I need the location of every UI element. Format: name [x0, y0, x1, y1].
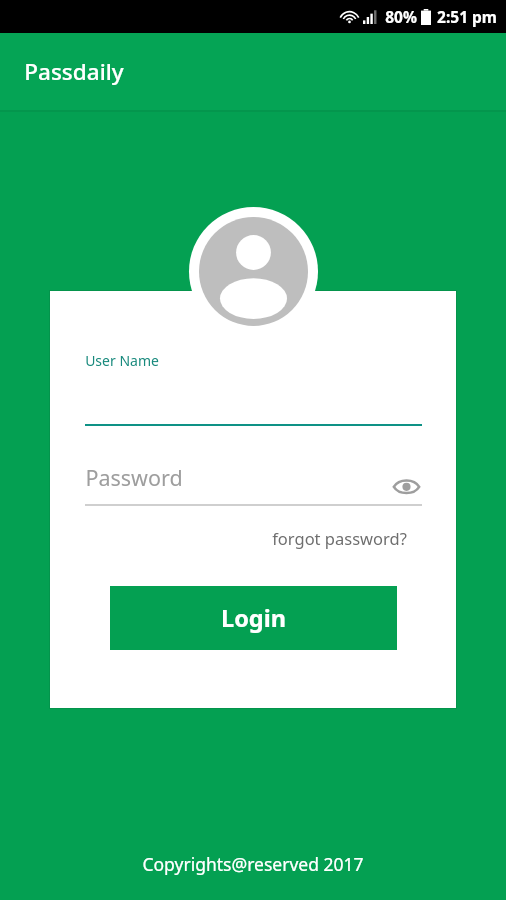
staticText: Login	[221, 602, 286, 634]
staticText: Passdaily	[24, 56, 124, 87]
button[interactable]: Login	[110, 586, 397, 650]
staticText: Password	[85, 463, 183, 492]
staticText: forgot password?	[272, 527, 407, 549]
staticText: Copyrights@reserved 2017	[142, 852, 364, 876]
staticText: User Name	[85, 351, 159, 370]
staticText: 2:51 pm	[437, 6, 497, 27]
button[interactable]: Show password	[390, 470, 422, 502]
button[interactable]: forgot password?	[272, 527, 407, 549]
staticText: 80%	[385, 6, 417, 27]
